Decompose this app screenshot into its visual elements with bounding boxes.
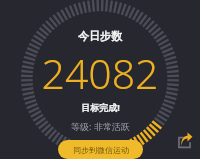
staticText: 等级: 非常活跃 (71, 120, 130, 132)
button[interactable]: Share (173, 130, 195, 152)
staticText: 24082 (41, 45, 159, 101)
staticText: 今日步数 (78, 29, 122, 43)
staticText: 目标完成! (81, 101, 120, 113)
button[interactable]: 同步到微信运动 (58, 140, 143, 159)
staticText: 同步到微信运动 (73, 145, 129, 155)
